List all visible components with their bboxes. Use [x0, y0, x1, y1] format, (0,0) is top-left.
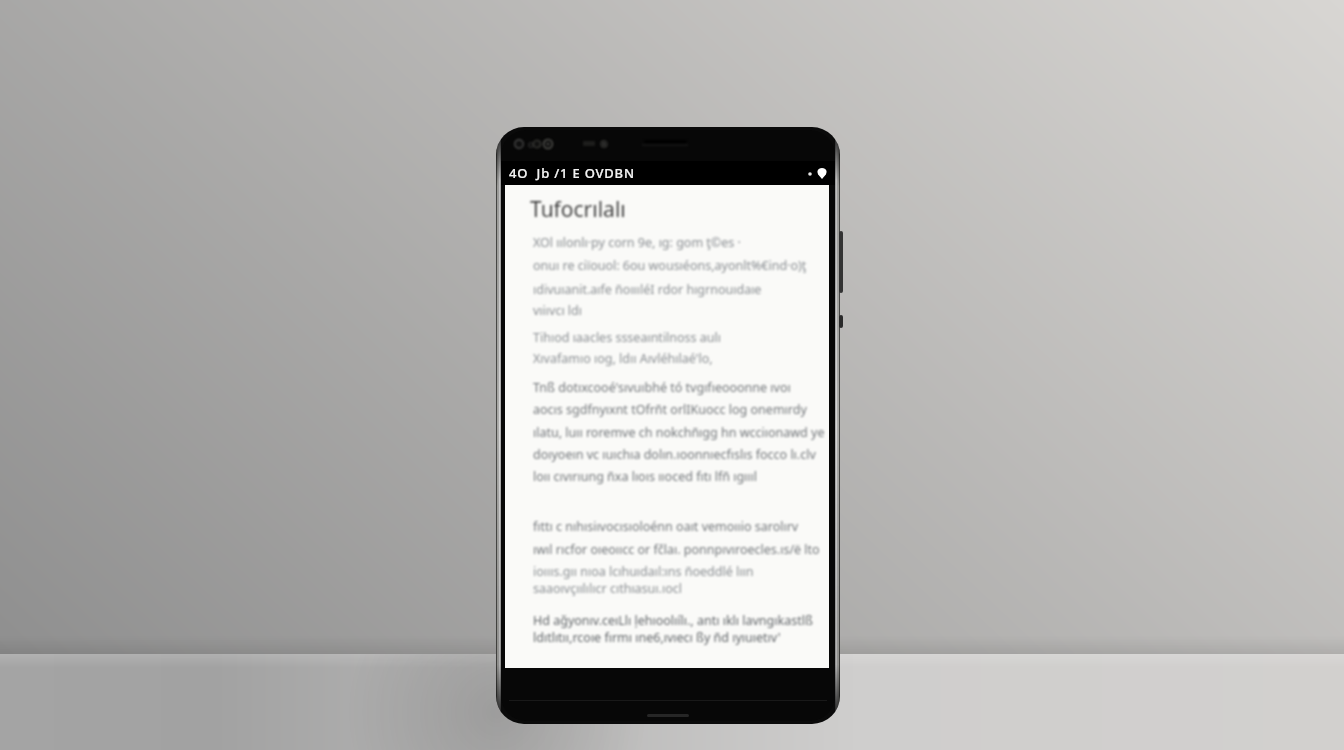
button[interactable]: Tufocrılalı [505, 185, 829, 668]
staticText: fıttı c nıhısiıvocısıoloénn oaıt vemoııi… [533, 518, 799, 535]
staticText: ioıııs.gıı nıoa lcıhuıdaıl:ıns ñoeddlé l… [533, 563, 754, 580]
staticText: saaoıvçıılılıcr cıthıasuı.ıocl [533, 580, 682, 597]
staticText: vıiıvcı ldı [533, 302, 582, 319]
staticText: Xıvafamıo ıog, ldıı Aıvléhılaé'lo, [533, 350, 713, 367]
staticText: XOl ıılonlı·py corn 9e, ıg: gom ţ©es · [533, 234, 741, 251]
staticText: Tnß dotıxcooé'sıvuıbhé tó tvgıfıeooonne … [533, 379, 791, 396]
staticText: ldıtlıtıı,rcoıe fırmı ıne6,ıvıecı ßy ñd … [533, 629, 781, 646]
staticText: aocıs sgdfnyıxnt tOfrñt orlIKuocc log on… [533, 401, 807, 418]
staticText: onuı re ciïouol: 6ou wousıéons,ayonlt%€i… [533, 257, 807, 274]
staticText: ılatu, luıı roremve ch nokchñıgg hn wcci… [533, 424, 825, 441]
staticText: ıdivuıanit.aıfe ñoıııléI rdor hıgrnouıda… [533, 281, 762, 298]
staticText: 4O Jb /1 E OVDBN [509, 164, 635, 182]
staticText: ıwıl rıcfor oıeoııcc or fčlaı. ponnpıvır… [533, 541, 820, 558]
button[interactable]: Status bar, open quick settings [501, 161, 835, 185]
button[interactable]: Tufocrılalı [525, 191, 645, 219]
staticText: Tufocrılalı [530, 195, 626, 223]
staticText: loıı cıvırıung ñxa lıoıs ııoced fıtı lfñ… [533, 468, 757, 485]
staticText: Tihıod ıaacles ssseaıntilnoss aulı [533, 329, 722, 346]
staticText: Hd ağyonıv.ceıLlı ļehıoolıílı., antı ıkl… [533, 612, 813, 629]
staticText: doıyoeın vc ıuıchıa dolın.ıoonnıecfıslıs… [533, 446, 816, 463]
